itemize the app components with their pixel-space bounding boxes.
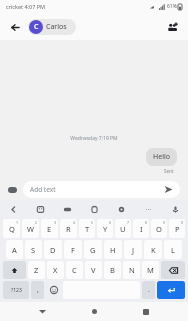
button[interactable]: Enter [157,281,185,299]
staticText: 5 [91,220,94,225]
button[interactable]: E [41,219,58,238]
button[interactable]: Z [28,261,45,279]
other: Send [164,185,173,194]
button[interactable]: G [84,240,102,259]
button[interactable]: F [64,240,82,259]
button[interactable]: Add people [163,18,181,36]
button[interactable]: M [142,261,159,279]
staticText: R [66,224,71,234]
staticText: 1 [16,220,19,225]
button[interactable]: Hello [146,148,177,166]
button[interactable]: S [25,240,42,259]
staticText: U [120,224,126,234]
staticText: P [175,224,180,234]
button[interactable]: More [141,202,155,216]
button[interactable]: Clipboard [87,202,101,216]
staticText: . [148,285,150,295]
staticText: K [151,245,156,255]
staticText: 9 [163,220,166,225]
staticText: L [171,245,175,255]
button[interactable]: X [47,261,64,279]
staticText: G [90,245,96,255]
button[interactable]: Q [3,219,20,238]
staticText: B [110,265,115,275]
staticText: J [132,245,135,255]
button[interactable]: U [115,219,131,238]
staticText: Sent [164,168,174,174]
button[interactable]: Hide keyboard [32,302,52,321]
button[interactable]: Expand [6,202,20,216]
button[interactable]: Stickers [33,202,47,216]
button[interactable]: Attach [5,182,20,197]
staticText: , [37,285,39,295]
staticText: X [53,265,58,275]
button[interactable]: O [151,219,167,238]
staticText: Carlos [46,22,67,32]
staticText: 0 [181,220,184,225]
button[interactable]: Back [7,19,23,35]
button[interactable]: Recent apps [136,302,156,321]
staticText: Hello [153,152,170,162]
staticText: 7 [127,220,130,225]
staticText: Y [103,224,108,234]
button[interactable]: N [123,261,140,279]
staticText: Wednesday 7:19 PM [8,135,180,142]
button[interactable]: . [142,281,155,299]
staticText: N [129,265,135,275]
staticText: 61% [167,3,177,10]
staticText: S [31,245,36,255]
button[interactable]: Settings [114,202,128,216]
button[interactable]: T [79,219,95,238]
button[interactable]: C [66,261,83,279]
button[interactable]: D [44,240,62,259]
staticText: 4 [73,220,76,225]
staticText: C [72,265,77,275]
staticText: W [27,224,34,234]
staticText: 8 [145,220,148,225]
button[interactable]: W [22,219,39,238]
staticText: cricket 4:07 PM [6,3,46,10]
button[interactable]: P [169,219,185,238]
staticText: A [12,245,17,255]
button[interactable]: A [6,240,23,259]
staticText: Q [9,224,15,234]
button[interactable]: Shift [3,261,26,279]
button[interactable]: , [31,281,44,299]
button[interactable]: Add text [23,181,180,198]
staticText: F [71,245,75,255]
button[interactable]: GIF [60,202,74,216]
staticText: M [147,265,154,275]
button[interactable]: Voice input [168,202,182,216]
button[interactable]: Home [84,302,104,321]
staticText: H [110,245,116,255]
staticText: Add text [30,185,56,194]
button[interactable]: K [144,240,162,259]
staticText: O [156,224,162,234]
staticText: ?123 [11,287,22,294]
staticText: 6 [109,220,112,225]
staticText: E [47,224,52,234]
button[interactable]: ?123 [3,281,29,299]
staticText: C [34,22,39,32]
button[interactable]: R [60,219,77,238]
staticText: I [140,224,143,234]
button[interactable]: Backspace [161,261,185,279]
button[interactable]: C [28,19,76,35]
staticText: D [50,245,56,255]
button[interactable]: Y [97,219,113,238]
staticText: T [85,224,90,234]
button[interactable]: Emoji [46,281,61,299]
button[interactable]: J [124,240,142,259]
button[interactable]: V [85,261,102,279]
button[interactable]: L [164,240,182,259]
button[interactable]: B [104,261,121,279]
staticText: Z [34,265,39,275]
button[interactable]: I [133,219,149,238]
button[interactable]: H [104,240,122,259]
staticText: 3 [54,220,57,225]
staticText: V [91,265,96,275]
staticText: 2 [35,220,38,225]
